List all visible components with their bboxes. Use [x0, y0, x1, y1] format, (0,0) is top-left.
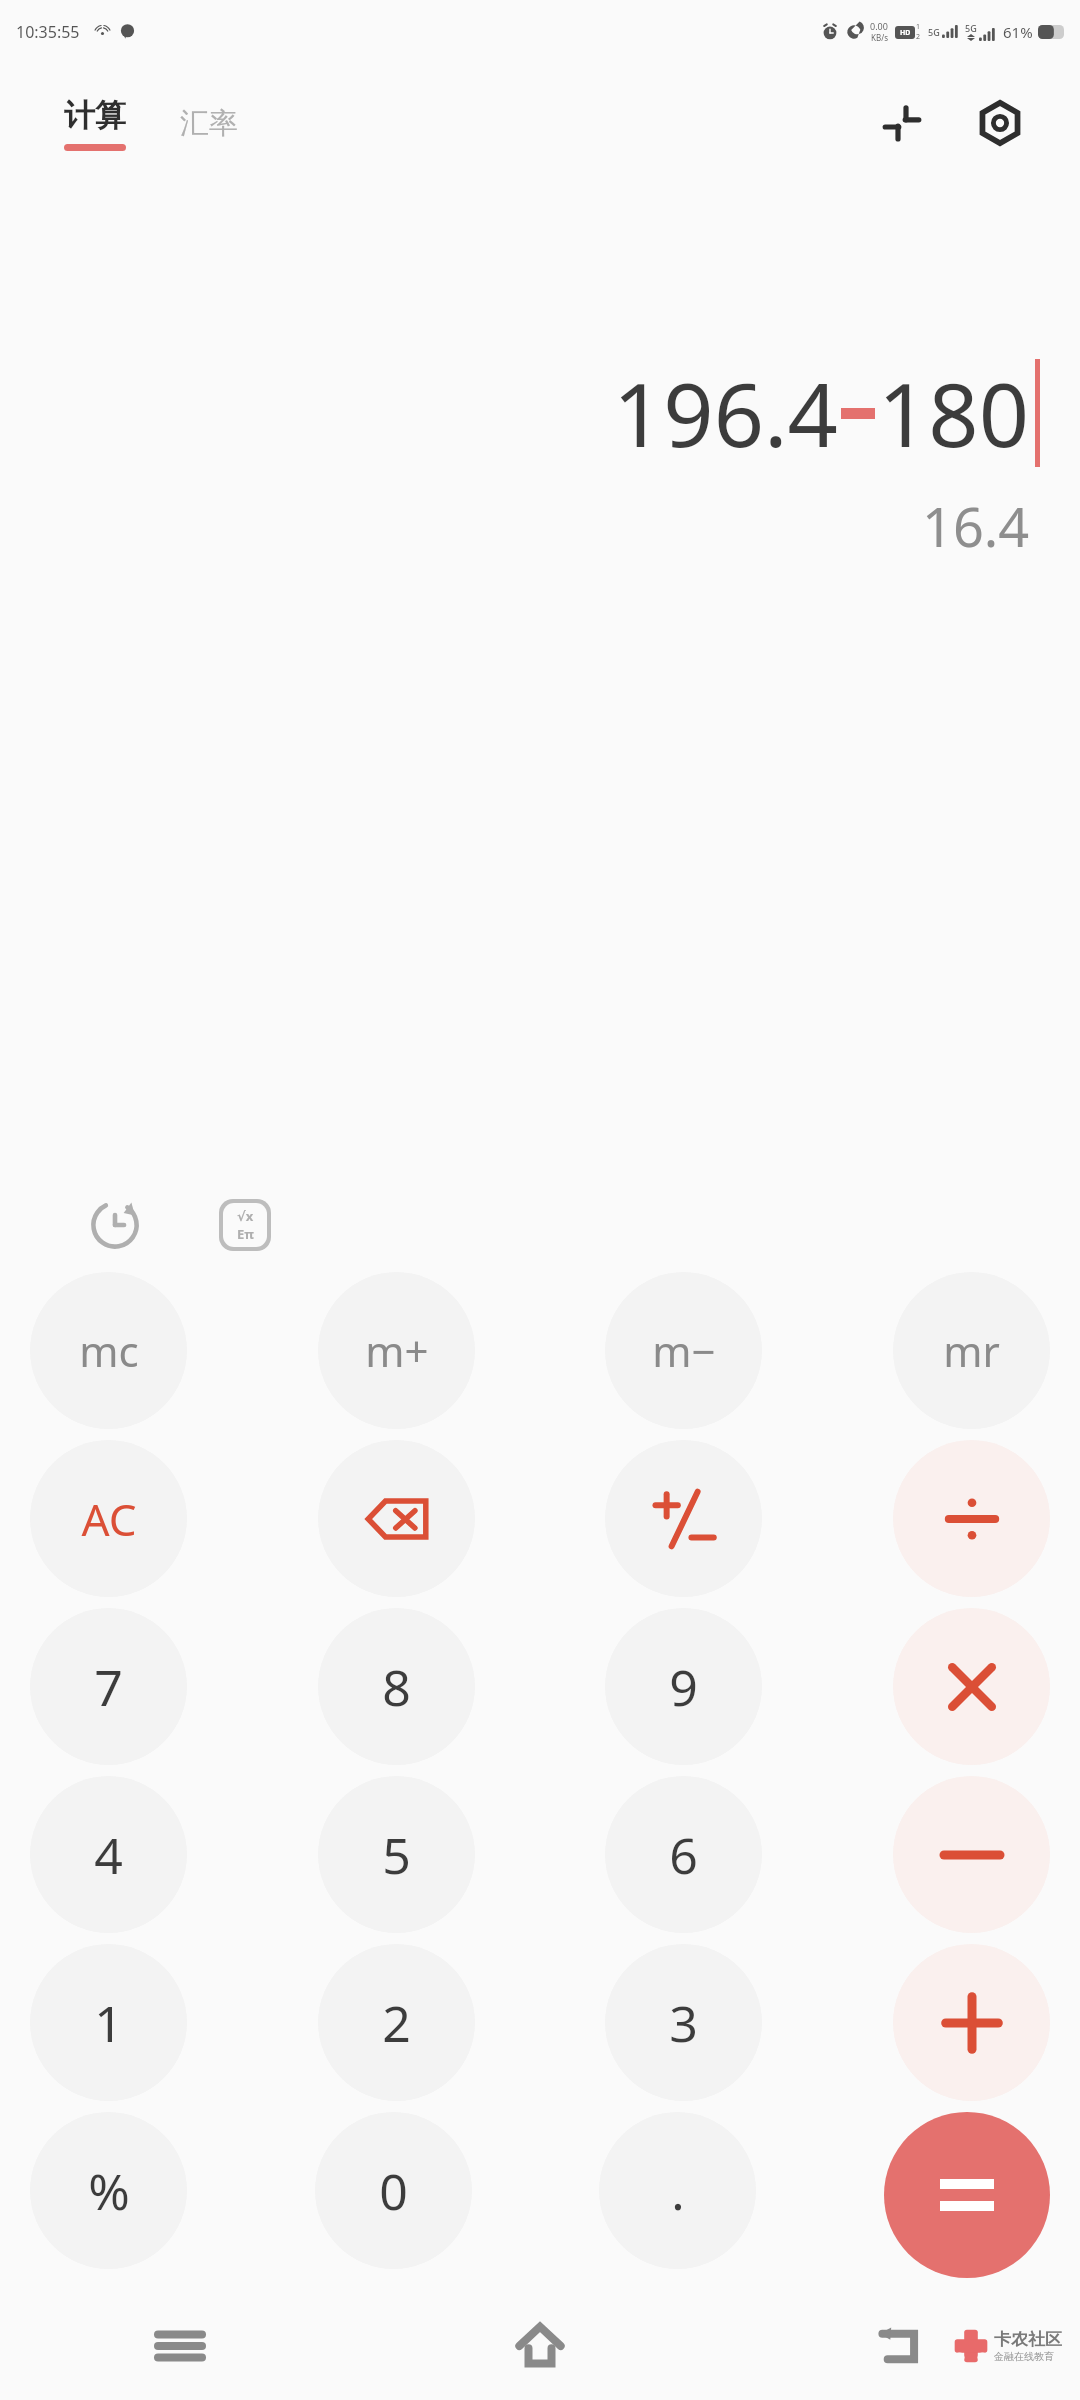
- staticText: 3: [669, 1989, 698, 2057]
- button[interactable]: Settings: [964, 87, 1036, 159]
- button[interactable]: 3: [605, 1944, 762, 2101]
- button[interactable]: Backspace: [318, 1440, 475, 1597]
- staticText: 5: [382, 1821, 411, 1889]
- staticText: 0: [379, 2157, 408, 2225]
- staticText: 4: [94, 1821, 123, 1889]
- button[interactable]: Expand: [866, 87, 938, 159]
- button[interactable]: Back: [720, 2292, 1080, 2400]
- button[interactable]: Multiply: [893, 1608, 1050, 1765]
- button[interactable]: 7: [30, 1608, 187, 1765]
- button[interactable]: 汇率: [176, 99, 242, 148]
- staticText: HD: [900, 28, 911, 38]
- button[interactable]: 2: [318, 1944, 475, 2101]
- staticText: 180: [878, 353, 1030, 473]
- button[interactable]: Recent apps: [0, 2292, 360, 2400]
- button[interactable]: Scientific mode: [208, 1188, 282, 1262]
- staticText: %: [88, 2157, 130, 2225]
- button[interactable]: 6: [605, 1776, 762, 1933]
- staticText: 计算: [64, 96, 126, 135]
- button[interactable]: 8: [318, 1608, 475, 1765]
- staticText: 10:35:55: [16, 21, 80, 43]
- staticText: 汇率: [180, 105, 238, 142]
- staticText: 196.4: [613, 353, 838, 473]
- button[interactable]: Equals: [884, 2112, 1050, 2278]
- button[interactable]: .: [599, 2112, 756, 2269]
- button[interactable]: AC: [30, 1440, 187, 1597]
- staticText: 5G: [928, 26, 940, 38]
- button[interactable]: 0: [315, 2112, 472, 2269]
- staticText: mc: [79, 1322, 139, 1379]
- button[interactable]: m+: [318, 1272, 475, 1429]
- button[interactable]: Divide: [893, 1440, 1050, 1597]
- button[interactable]: Plus: [893, 1944, 1050, 2101]
- staticText: 1: [916, 22, 921, 32]
- button[interactable]: Minus: [893, 1776, 1050, 1933]
- staticText: 7: [94, 1653, 123, 1721]
- staticText: 2: [382, 1989, 411, 2057]
- staticText: 6: [669, 1821, 698, 1889]
- button[interactable]: 1: [30, 1944, 187, 2101]
- staticText: 5G: [965, 22, 977, 34]
- staticText: .: [671, 2157, 685, 2225]
- button[interactable]: mr: [893, 1272, 1050, 1429]
- button[interactable]: Home: [360, 2292, 720, 2400]
- button[interactable]: 9: [605, 1608, 762, 1765]
- button[interactable]: %: [30, 2112, 187, 2269]
- staticText: 0.00: [870, 20, 888, 32]
- staticText: √x: [237, 1207, 254, 1225]
- staticText: 金融在线教育: [994, 2350, 1054, 2363]
- staticText: AC: [81, 1489, 137, 1549]
- staticText: 9: [669, 1653, 698, 1721]
- staticText: 2: [916, 32, 921, 42]
- staticText: m−: [652, 1322, 716, 1379]
- staticText: Eπ: [237, 1225, 254, 1243]
- staticText: 1: [94, 1989, 123, 2057]
- button[interactable]: 5: [318, 1776, 475, 1933]
- button[interactable]: 计算: [60, 96, 130, 151]
- button[interactable]: m−: [605, 1272, 762, 1429]
- staticText: 16.4: [922, 489, 1030, 563]
- button[interactable]: mc: [30, 1272, 187, 1429]
- button[interactable]: History: [78, 1188, 152, 1262]
- staticText: 61%: [1003, 22, 1033, 42]
- staticText: mr: [943, 1322, 1000, 1379]
- staticText: m+: [365, 1322, 429, 1379]
- button[interactable]: 4: [30, 1776, 187, 1933]
- staticText: 卡农社区: [994, 2329, 1062, 2350]
- staticText: 8: [382, 1653, 411, 1721]
- staticText: KB/s: [871, 32, 888, 43]
- button[interactable]: Toggle sign: [605, 1440, 762, 1597]
